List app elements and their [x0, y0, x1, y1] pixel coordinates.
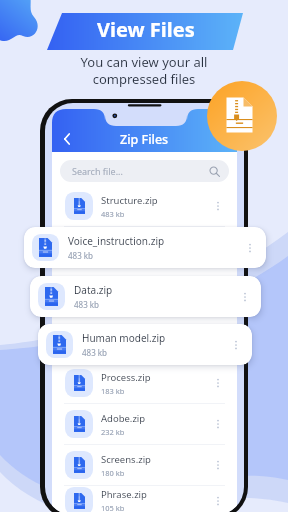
button[interactable]: More options — [242, 240, 258, 256]
staticText: Structure.zip — [101, 194, 158, 207]
staticText: 483 kb — [101, 209, 125, 219]
staticText: Adobe.zip — [101, 412, 146, 425]
button[interactable]: More options — [210, 416, 226, 432]
button[interactable]: Voice_instruction.zip — [24, 227, 266, 268]
staticText: 483 kb — [82, 347, 107, 358]
button[interactable]: Zip file — [207, 81, 277, 151]
button[interactable]: Phrase.zip — [52, 486, 237, 512]
staticText: 232 kb — [101, 427, 125, 437]
staticText: Process.zip — [101, 371, 151, 384]
staticText: 483 kb — [68, 250, 93, 261]
staticText: Screens.zip — [101, 453, 151, 466]
button[interactable]: More options — [210, 493, 226, 509]
staticText: Human model.zip — [82, 331, 166, 345]
button[interactable]: More options — [210, 457, 226, 473]
staticText: Zip Files — [120, 131, 169, 148]
button[interactable]: More options — [210, 375, 226, 391]
button[interactable]: More options — [237, 289, 253, 305]
staticText: Data.zip — [74, 283, 113, 297]
button[interactable]: Search file... — [60, 160, 229, 182]
button[interactable]: More options — [210, 198, 226, 214]
button[interactable]: Human model.zip — [38, 324, 252, 365]
button[interactable]: Screens.zip — [52, 445, 237, 485]
button[interactable]: More options — [228, 337, 244, 353]
staticText: Phrase.zip — [101, 488, 147, 501]
staticText: Voice_instruction.zip — [68, 234, 165, 248]
staticText: 105 kb — [101, 503, 125, 512]
staticText: 483 kb — [74, 299, 99, 310]
staticText: Search file... — [72, 165, 123, 177]
button[interactable]: Back — [58, 130, 76, 148]
button[interactable]: Process.zip — [52, 363, 237, 403]
staticText: 180 kb — [101, 468, 125, 478]
button[interactable]: Structure.zip — [52, 186, 237, 226]
staticText: 183 kb — [101, 386, 125, 396]
staticText: View Files — [97, 16, 195, 43]
button[interactable]: Data.zip — [30, 276, 261, 317]
staticText: You can view your all compressed files — [0, 53, 288, 88]
button[interactable]: Adobe.zip — [52, 404, 237, 444]
